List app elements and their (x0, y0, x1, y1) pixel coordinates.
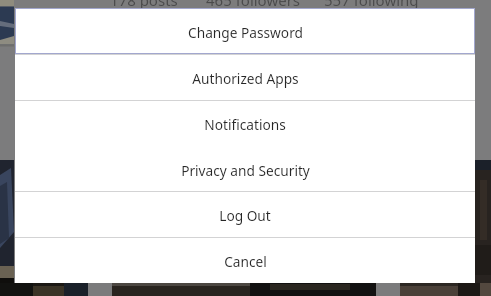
button[interactable]: Log Out (15, 191, 475, 237)
button[interactable]: Cancel (15, 237, 475, 283)
staticText: Notifications (204, 115, 286, 134)
staticText: Change Password (188, 23, 303, 42)
staticText: 178 posts (110, 0, 178, 10)
button[interactable]: Change Password (15, 8, 475, 54)
button[interactable]: Privacy and Security (15, 146, 475, 192)
staticText: Authorized Apps (192, 69, 299, 88)
staticText: 557 following (324, 0, 419, 10)
button[interactable]: Authorized Apps (15, 54, 475, 100)
staticText: 465 followers (206, 0, 301, 10)
button[interactable]: Notifications (15, 100, 475, 146)
staticText: Cancel (224, 252, 267, 271)
staticText: Log Out (219, 206, 271, 225)
staticText: Privacy and Security (181, 161, 310, 180)
